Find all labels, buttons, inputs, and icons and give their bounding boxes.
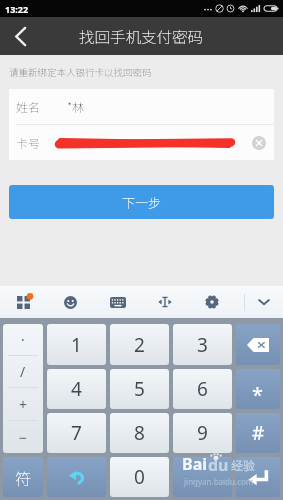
staticText: 5 <box>134 376 145 402</box>
button[interactable]: 收起键盘 <box>245 286 283 318</box>
staticText: * <box>252 381 264 408</box>
button[interactable]: 1 <box>47 324 106 365</box>
staticText: jingyan.baidu.com <box>184 476 254 487</box>
staticText: 0 <box>134 464 145 490</box>
staticText: 1 <box>71 332 82 358</box>
button[interactable]: 应用 <box>0 286 47 318</box>
staticText: 卡号 <box>16 134 41 151</box>
button[interactable]: 删除 <box>236 324 280 365</box>
staticText: 7 <box>71 420 82 446</box>
staticText: 9 <box>197 420 208 446</box>
button[interactable]: 0 <box>110 457 169 497</box>
button[interactable]: 清除 <box>252 136 266 150</box>
button[interactable]: 下一步 <box>9 185 274 219</box>
staticText: # <box>252 420 265 446</box>
button[interactable]: 2 <box>110 324 169 365</box>
button[interactable]: 5 <box>110 369 169 409</box>
button[interactable]: 姓名 <box>9 89 274 124</box>
staticText: 2 <box>134 332 145 358</box>
staticText: / <box>20 362 26 381</box>
staticText: *林 <box>67 98 85 115</box>
button[interactable]: * <box>236 369 280 409</box>
button[interactable]: 4 <box>47 369 106 409</box>
button[interactable]: 键盘 <box>94 286 141 318</box>
button[interactable]: # <box>236 413 280 453</box>
button[interactable]: · <box>3 324 43 453</box>
staticText: · <box>21 330 25 349</box>
button[interactable]: 8 <box>110 413 169 453</box>
button[interactable]: 设置 <box>188 286 235 318</box>
staticText: du <box>208 454 229 476</box>
button[interactable]: 百度 <box>173 457 232 497</box>
staticText: − <box>19 428 28 447</box>
button[interactable]: 表情 <box>47 286 94 318</box>
button[interactable]: 回车 <box>236 457 280 497</box>
staticText: 找回手机支付密码 <box>79 25 204 47</box>
staticText: 经验 <box>231 456 256 473</box>
button[interactable]: 撤销 <box>47 457 106 497</box>
staticText: 6 <box>197 376 208 402</box>
staticText: 13:22 <box>5 3 29 15</box>
button[interactable]: 卡号 <box>9 125 274 160</box>
staticText: 请重新绑定本人银行卡以找回密码 <box>9 65 152 79</box>
button[interactable]: 移动光标 <box>141 286 188 318</box>
staticText: 3 <box>197 332 208 358</box>
button[interactable]: 6 <box>173 369 232 409</box>
staticText: 8 <box>134 420 145 446</box>
staticText: 符 <box>15 466 32 489</box>
button[interactable]: 符 <box>3 457 43 497</box>
staticText: 下一步 <box>122 193 162 212</box>
staticText: 4 <box>71 376 82 402</box>
button[interactable]: 7 <box>47 413 106 453</box>
staticText: + <box>19 395 28 414</box>
button[interactable]: 9 <box>173 413 232 453</box>
button[interactable]: 返回 <box>0 17 40 55</box>
staticText: 姓名 <box>16 98 41 115</box>
button[interactable]: 3 <box>173 324 232 365</box>
staticText: Bai <box>182 453 208 475</box>
